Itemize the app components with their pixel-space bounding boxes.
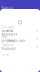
- staticText: Email: [1, 35, 7, 39]
- staticText: Full name: [1, 26, 14, 29]
- staticText: jon@example.com: [1, 39, 24, 42]
- staticText: Required: [1, 47, 15, 50]
- staticText: Sign in: [1, 5, 12, 11]
- staticText: Terms: [1, 53, 8, 56]
- staticText: Password: [1, 43, 13, 47]
- staticText: Jonathan Appleseed: [1, 29, 17, 36]
